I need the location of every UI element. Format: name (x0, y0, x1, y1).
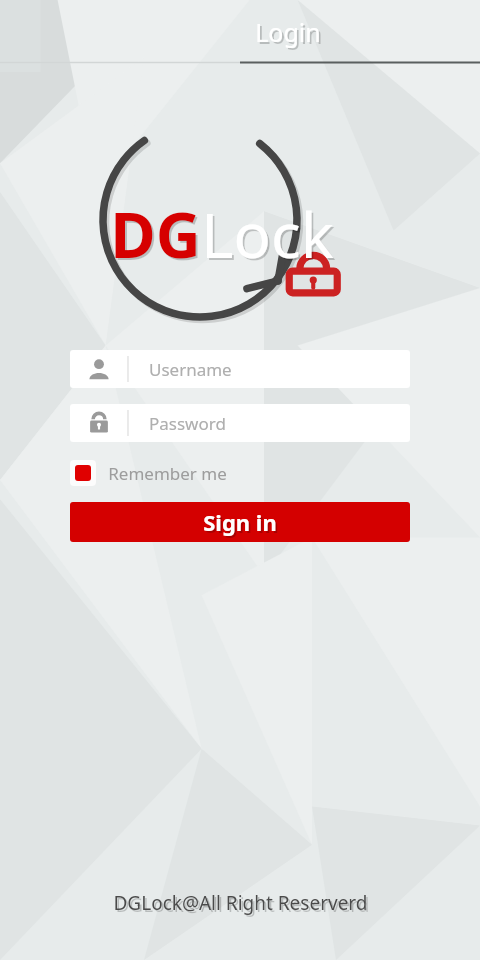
staticText: Password (149, 412, 226, 435)
staticText: Remember me (108, 462, 227, 485)
button[interactable]: Username (70, 350, 410, 388)
staticText: DGLock@All Right Reserverd (113, 890, 368, 916)
button[interactable]: Sign in (70, 502, 410, 542)
staticText: Sign in (205, 509, 279, 539)
staticText: Login (257, 17, 323, 51)
button[interactable]: Remember me (70, 456, 241, 490)
button[interactable]: Login (243, 9, 333, 55)
staticText: DG (110, 192, 201, 276)
button[interactable]: Password (70, 404, 410, 442)
staticText: Login (255, 15, 321, 49)
staticText: DGLock@All Right Reserverd (115, 892, 370, 918)
staticText: DG (112, 194, 203, 278)
staticText: Sign in (203, 507, 277, 537)
staticText: Lock (201, 192, 334, 276)
staticText: Lock (203, 194, 336, 278)
staticText: Username (149, 358, 232, 381)
